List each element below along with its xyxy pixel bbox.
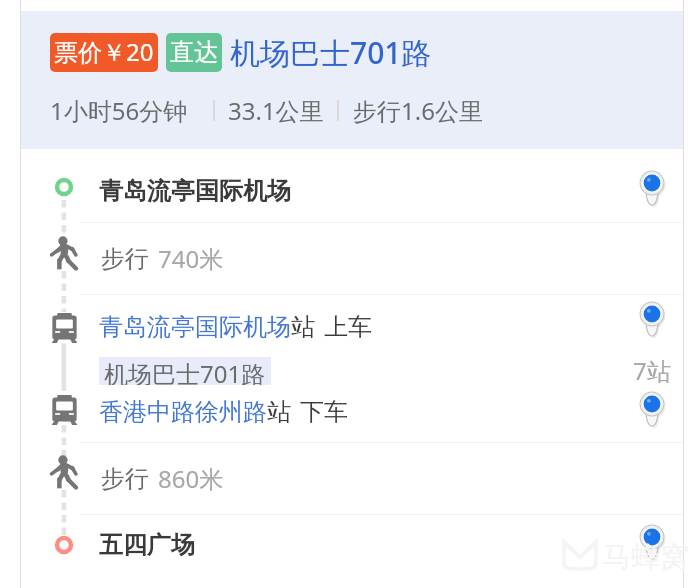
staticText: 下车 (300, 397, 348, 427)
staticText: 7站 (633, 354, 671, 387)
staticText: 站 (267, 397, 291, 427)
staticText: 33.1公里 (228, 94, 324, 127)
button[interactable]: Show on map (635, 169, 669, 209)
staticText: 机场巴士701路 (104, 357, 266, 385)
staticText: 步行 (101, 244, 149, 274)
staticText: 1小时56分钟 (50, 94, 188, 127)
staticText: 香港中路徐州路 (99, 397, 267, 427)
button[interactable]: Show on map (635, 390, 669, 430)
button[interactable]: 步行 (21, 443, 683, 514)
button[interactable]: 青岛流亭国际机场 (21, 295, 683, 442)
staticText: 直达 (170, 37, 218, 67)
staticText: 步行1.6公里 (353, 94, 483, 127)
staticText: 马蜂窝 (602, 539, 689, 576)
staticText: 青岛流亭国际机场 (99, 312, 291, 342)
staticText: 860米 (158, 462, 224, 495)
staticText: 青岛流亭国际机场 (99, 176, 291, 206)
button[interactable]: Show on map (635, 523, 669, 563)
staticText: 740米 (158, 242, 224, 275)
staticText: 站 (291, 312, 315, 342)
button[interactable]: Show on map (635, 300, 669, 340)
button[interactable]: 青岛流亭国际机场 (21, 150, 683, 222)
staticText: 步行 (101, 464, 149, 494)
button[interactable]: 五四广场 (21, 515, 683, 588)
staticText: 机场巴士701路 (230, 32, 432, 73)
button[interactable]: 步行 (21, 223, 683, 294)
staticText: 上车 (324, 312, 372, 342)
button[interactable]: 票价￥20 (21, 11, 683, 149)
staticText: 票价￥20 (54, 35, 154, 68)
staticText: 五四广场 (99, 530, 195, 560)
